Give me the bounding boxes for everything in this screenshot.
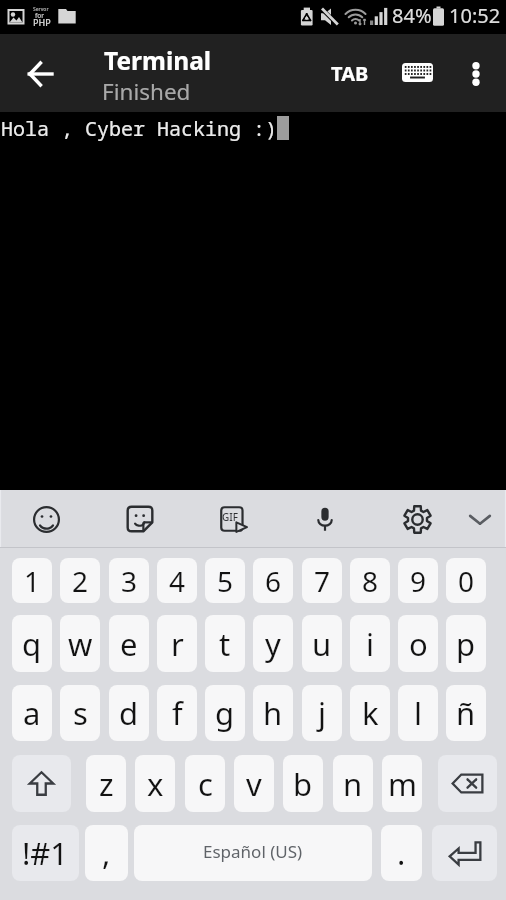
staticText: c xyxy=(198,763,213,805)
button[interactable]: 3 xyxy=(109,558,149,603)
button[interactable]: a xyxy=(12,685,52,741)
staticText: 6 xyxy=(265,562,282,600)
button[interactable]: Hide keyboard xyxy=(433,490,506,548)
button[interactable]: 0 xyxy=(446,558,486,603)
staticText: x xyxy=(147,763,164,805)
staticText: t xyxy=(219,623,231,665)
staticText: y xyxy=(265,623,281,665)
staticText: . xyxy=(397,832,406,874)
staticText: j xyxy=(318,692,326,734)
staticText: Hola , Cyber Hacking :) xyxy=(1,115,277,142)
staticText: Terminal xyxy=(104,44,212,77)
staticText: m xyxy=(388,763,417,805)
button[interactable]: i xyxy=(350,615,390,672)
button[interactable]: ñ xyxy=(446,685,486,741)
button[interactable]: x xyxy=(135,755,175,812)
button[interactable]: s xyxy=(60,685,100,741)
button[interactable]: w xyxy=(60,615,100,672)
button[interactable]: n xyxy=(333,755,373,812)
button[interactable]: e xyxy=(109,615,149,672)
staticText: 2 xyxy=(72,562,89,600)
button[interactable]: h xyxy=(253,685,293,741)
staticText: 10:52 xyxy=(449,2,501,29)
staticText: Español (US) xyxy=(203,840,303,863)
staticText: 4 xyxy=(169,562,186,600)
staticText: 1 xyxy=(24,562,41,600)
button[interactable]: k xyxy=(350,685,390,741)
staticText: l xyxy=(414,692,422,734)
button[interactable]: l xyxy=(398,685,438,741)
staticText: 9 xyxy=(410,562,427,600)
button[interactable]: r xyxy=(157,615,197,672)
button[interactable]: b xyxy=(283,755,323,812)
staticText: i xyxy=(366,623,374,665)
button[interactable]: c xyxy=(185,755,225,812)
staticText: p xyxy=(456,623,476,665)
staticText: b xyxy=(293,763,313,805)
button[interactable]: p xyxy=(446,615,486,672)
button[interactable]: z xyxy=(86,755,126,812)
button[interactable]: Settings xyxy=(371,490,464,548)
staticText: GIF xyxy=(222,510,239,524)
button[interactable]: j xyxy=(302,685,342,741)
button[interactable]: y xyxy=(253,615,293,672)
staticText: 84% xyxy=(392,2,432,29)
button[interactable]: Back xyxy=(12,47,68,103)
button[interactable]: 5 xyxy=(205,558,245,603)
button[interactable]: d xyxy=(109,685,149,741)
button[interactable]: m xyxy=(382,755,422,812)
staticText: k xyxy=(362,692,379,734)
button[interactable]: Español (US) xyxy=(134,825,372,881)
button[interactable]: o xyxy=(398,615,438,672)
staticText: for xyxy=(35,11,45,20)
button[interactable]: Shift xyxy=(12,755,71,812)
button[interactable]: Voice input xyxy=(278,490,371,548)
button[interactable]: 8 xyxy=(350,558,390,603)
staticText: f xyxy=(172,692,183,734)
staticText: PHP xyxy=(33,16,51,28)
button[interactable]: Enter xyxy=(432,825,497,881)
button[interactable]: Stickers xyxy=(93,490,186,548)
button[interactable]: 2 xyxy=(60,558,100,603)
staticText: 0 xyxy=(458,562,475,600)
button[interactable]: Emoji xyxy=(0,490,93,548)
staticText: !#1 xyxy=(22,832,69,874)
staticText: Finished xyxy=(102,76,191,107)
button[interactable]: TAB xyxy=(322,48,378,98)
staticText: e xyxy=(120,623,138,665)
staticText: Servor xyxy=(33,6,49,13)
staticText: s xyxy=(73,692,88,734)
staticText: 5 xyxy=(217,562,234,600)
staticText: o xyxy=(409,623,428,665)
staticText: z xyxy=(99,763,114,805)
staticText: v xyxy=(246,763,262,805)
staticText: r xyxy=(171,623,184,665)
button[interactable]: 9 xyxy=(398,558,438,603)
staticText: a xyxy=(23,692,41,734)
button[interactable]: g xyxy=(205,685,245,741)
button[interactable]: 6 xyxy=(253,558,293,603)
button[interactable]: 4 xyxy=(157,558,197,603)
staticText: h xyxy=(263,692,283,734)
button[interactable]: q xyxy=(12,615,52,672)
button[interactable]: 7 xyxy=(302,558,342,603)
staticText: 7 xyxy=(314,562,331,600)
staticText: g xyxy=(215,692,235,734)
button[interactable]: f xyxy=(157,685,197,741)
button[interactable]: Keyboard xyxy=(389,47,445,97)
button[interactable]: !#1 xyxy=(12,825,79,881)
button[interactable]: , xyxy=(85,825,128,881)
staticText: d xyxy=(119,692,139,734)
button[interactable]: . xyxy=(381,825,422,881)
staticText: q xyxy=(22,623,42,665)
button[interactable]: More options xyxy=(450,49,502,99)
button[interactable]: u xyxy=(302,615,342,672)
button[interactable]: 1 xyxy=(12,558,52,603)
button[interactable]: v xyxy=(234,755,274,812)
staticText: 3 xyxy=(121,562,138,600)
button[interactable]: t xyxy=(205,615,245,672)
button[interactable]: GIF xyxy=(186,490,279,548)
button[interactable]: Backspace xyxy=(438,755,497,812)
staticText: ñ xyxy=(456,692,476,734)
staticText: n xyxy=(343,763,363,805)
